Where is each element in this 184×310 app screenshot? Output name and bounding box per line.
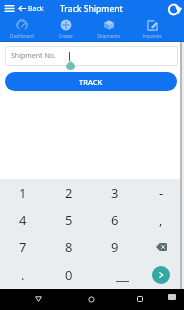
- button[interactable]: Back: [28, 289, 48, 309]
- staticText: Back: [28, 4, 44, 14]
- staticText: Inquiries: [142, 33, 162, 39]
- other: Delete: [156, 243, 167, 251]
- button[interactable]: ,: [138, 206, 184, 233]
- button[interactable]: Create: [44, 17, 87, 41]
- button[interactable]: 3: [92, 179, 138, 206]
- staticText: -: [159, 184, 164, 202]
- staticText: Track Shipment: [60, 3, 123, 15]
- staticText: TRACK: [79, 77, 103, 87]
- staticText: 0: [65, 266, 73, 284]
- staticText: 8: [65, 238, 73, 256]
- button[interactable]: 4: [0, 206, 46, 233]
- button[interactable]: 0: [46, 261, 92, 289]
- button[interactable]: Home: [81, 289, 101, 309]
- button[interactable]: 2: [46, 179, 92, 206]
- staticText: 7: [19, 238, 27, 256]
- button[interactable]: 9: [92, 233, 138, 261]
- staticText: 5: [65, 211, 73, 229]
- button[interactable]: 8: [46, 233, 92, 261]
- button[interactable]: Keyboard: [164, 289, 180, 305]
- staticText: 1: [19, 184, 27, 202]
- staticText: 3: [111, 184, 119, 202]
- button[interactable]: 5: [46, 206, 92, 233]
- button[interactable]: Recents: [130, 289, 150, 309]
- staticText: 4: [19, 211, 27, 229]
- staticText: 9: [111, 238, 119, 256]
- button[interactable]: Shipment No.: [5, 46, 178, 66]
- button[interactable]: -: [138, 179, 184, 206]
- button[interactable]: Delete: [138, 233, 184, 261]
- staticText: Shipments: [97, 33, 120, 39]
- other: Go: [152, 266, 170, 284]
- staticText: ,: [159, 211, 163, 229]
- button[interactable]: 6: [92, 206, 138, 233]
- button[interactable]: Refresh: [166, 1, 182, 17]
- staticText: Shipment No.: [11, 51, 56, 61]
- button[interactable]: Menu: [3, 2, 16, 15]
- button[interactable]: Inquiries: [130, 17, 173, 41]
- staticText: 2: [65, 184, 73, 202]
- button[interactable]: Back: [18, 0, 44, 17]
- button[interactable]: 7: [0, 233, 46, 261]
- button[interactable]: [92, 261, 138, 289]
- staticText: Create: [58, 33, 73, 39]
- staticText: .: [21, 266, 25, 284]
- staticText: Dashboard: [10, 33, 34, 39]
- button[interactable]: Dashboard: [0, 17, 44, 41]
- button[interactable]: Shipments: [87, 17, 130, 41]
- button[interactable]: TRACK: [5, 72, 177, 91]
- button[interactable]: Go: [138, 261, 184, 289]
- staticText: 6: [111, 211, 119, 229]
- button[interactable]: 1: [0, 179, 46, 206]
- button[interactable]: .: [0, 261, 46, 289]
